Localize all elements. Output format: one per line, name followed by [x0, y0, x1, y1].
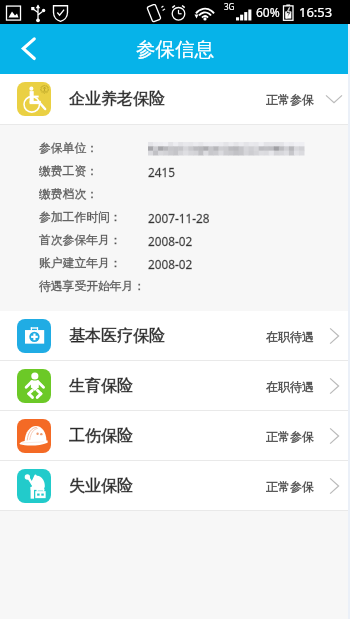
staticText: 在职待遇	[266, 329, 314, 344]
staticText: 工伤保险	[69, 426, 133, 446]
staticText: 企业养老保险	[69, 89, 165, 109]
button[interactable]: 工伤保险	[0, 411, 350, 461]
staticText: 正常参保	[266, 479, 314, 494]
staticText: 参加工作时间：	[39, 210, 122, 225]
staticText: 参保单位：	[39, 141, 98, 156]
staticText: 2008-02	[148, 233, 193, 249]
staticText: 在职待遇	[266, 329, 314, 344]
staticText: 缴费工资：	[39, 164, 98, 179]
staticText: 首次参保年月：	[39, 233, 122, 248]
staticText: 参加工作时间：	[39, 210, 122, 225]
staticText: 正常参保	[266, 429, 314, 444]
staticText: 2008-02	[148, 256, 193, 272]
staticText: 在职待遇	[266, 379, 314, 394]
staticText: 正常参保	[266, 429, 314, 444]
staticText: 缴费档次：	[39, 187, 98, 202]
button[interactable]: 企业养老保险	[0, 74, 350, 124]
staticText: 首次参保年月：	[39, 233, 122, 248]
staticText: 2008-02	[148, 233, 193, 249]
staticText: 参保单位：	[39, 141, 98, 156]
button[interactable]: 生育保险	[0, 361, 350, 411]
staticText: 生育保险	[69, 376, 133, 396]
staticText: 失业保险	[69, 476, 133, 496]
staticText: 基本医疗保险	[69, 326, 165, 346]
staticText: 在职待遇	[266, 379, 314, 394]
staticText: 账户建立年月：	[39, 256, 122, 271]
staticText: 正常参保	[266, 479, 314, 494]
button[interactable]: Back	[0, 24, 48, 74]
staticText: 2008-02	[148, 256, 193, 272]
staticText: 正常参保	[266, 92, 314, 107]
button[interactable]: 失业保险	[0, 461, 350, 511]
staticText: 账户建立年月：	[39, 256, 122, 271]
staticText: 正常参保	[266, 92, 314, 107]
staticText: 3G	[224, 1, 235, 12]
staticText: 16:53	[299, 3, 333, 21]
staticText: 2415	[148, 164, 175, 180]
staticText: 工伤保险	[69, 426, 133, 446]
button[interactable]: 基本医疗保险	[0, 311, 350, 361]
staticText: 60%	[256, 4, 280, 20]
staticText: 待遇享受开始年月：	[39, 279, 146, 294]
staticText: 参保信息	[136, 37, 214, 62]
staticText: 2415	[148, 164, 175, 180]
staticText: 失业保险	[69, 476, 133, 496]
staticText: 基本医疗保险	[69, 326, 165, 346]
staticText: 缴费档次：	[39, 187, 98, 202]
staticText: 企业养老保险	[69, 89, 165, 109]
staticText: 2007-11-28	[148, 210, 210, 226]
staticText: 缴费工资：	[39, 164, 98, 179]
staticText: 生育保险	[69, 376, 133, 396]
staticText: 待遇享受开始年月：	[39, 279, 146, 294]
staticText: 2007-11-28	[148, 210, 210, 226]
